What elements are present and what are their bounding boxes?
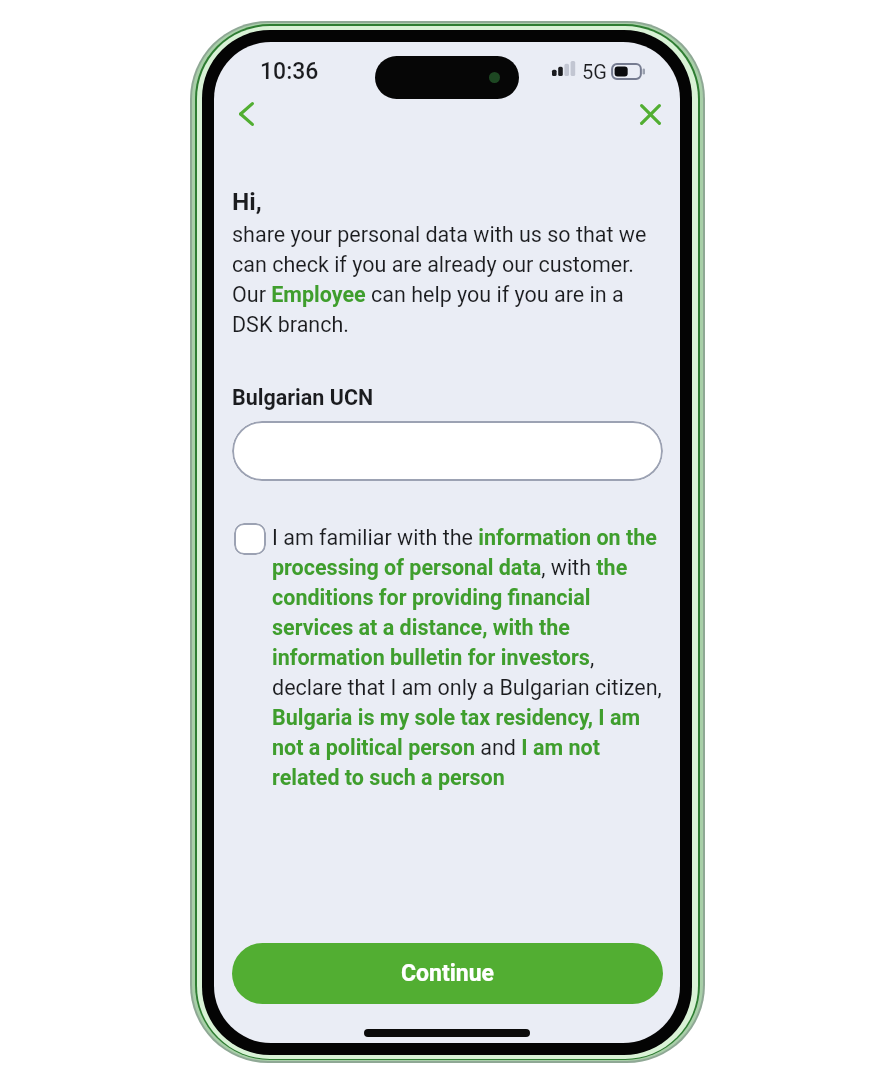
staticText: 10:36 [260,58,319,85]
staticText: Continue [401,960,495,987]
staticText: Hi, [232,186,262,216]
staticText: Bulgarian UCN [232,383,374,411]
staticText: 5G [582,60,607,83]
button[interactable]: Close [626,90,674,138]
staticText: share your personal data with us so that… [232,218,666,338]
button[interactable]: I am familiar with the terms [234,523,266,555]
button[interactable]: Back [222,90,270,138]
button[interactable] [232,421,663,481]
button[interactable]: Continue [232,943,663,1004]
staticText: I am familiar with the information on th… [272,521,664,791]
